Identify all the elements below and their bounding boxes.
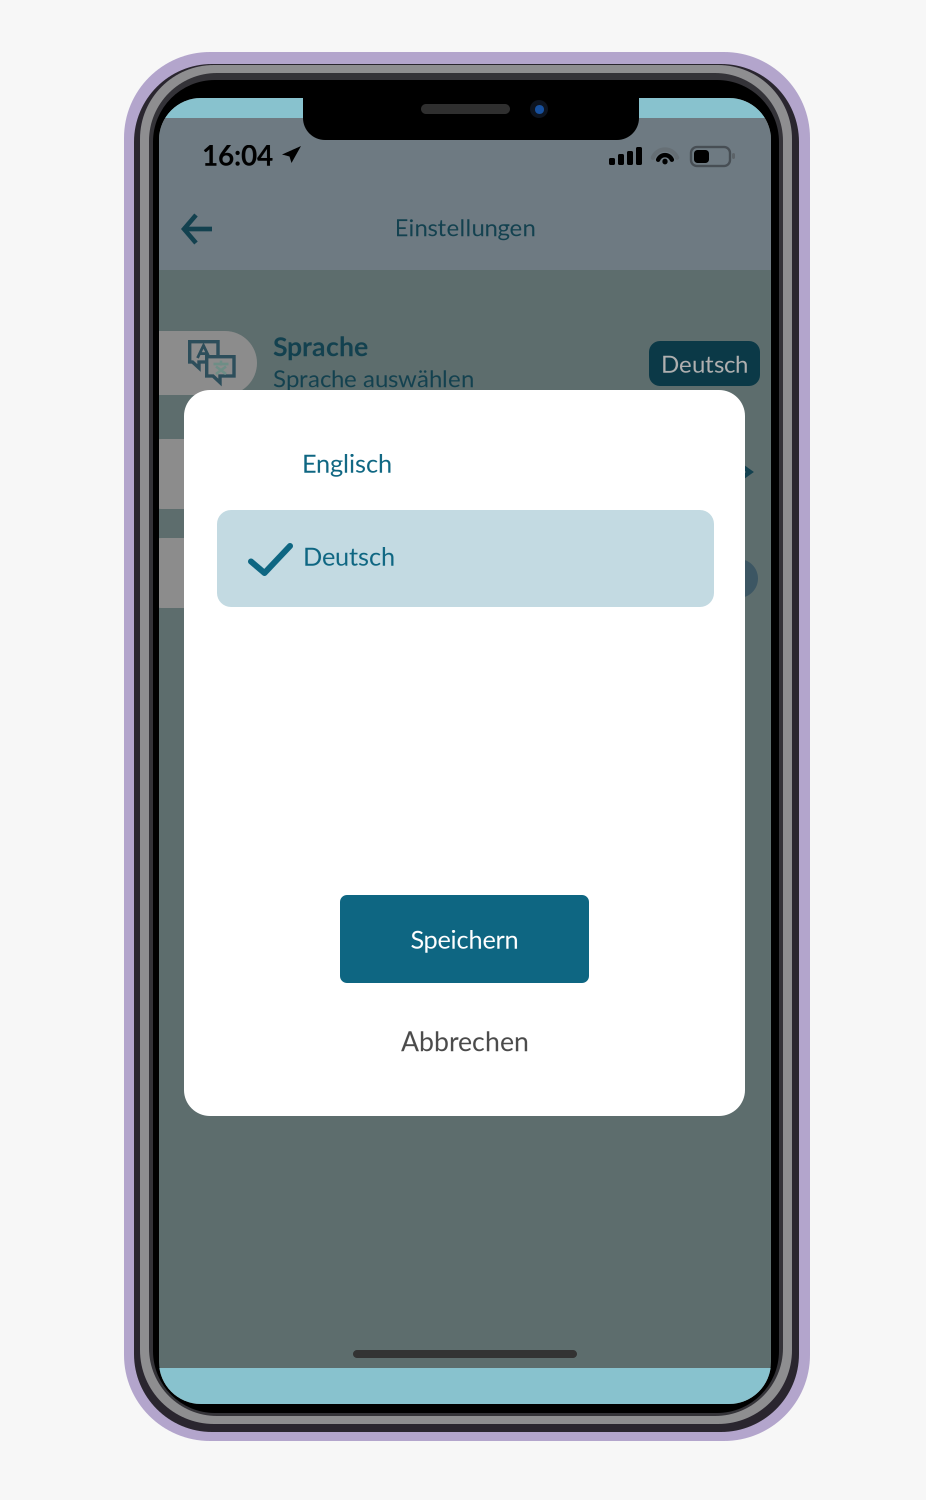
button[interactable]: Englisch <box>217 425 714 501</box>
staticText: Sprache auswählen <box>273 364 474 392</box>
button[interactable]: Speichern <box>340 895 589 983</box>
button[interactable]: Abbrechen <box>325 1009 605 1073</box>
staticText: Deutsch <box>303 541 395 571</box>
staticText: Englisch <box>302 448 392 478</box>
button[interactable]: Zurück <box>161 199 237 259</box>
staticText: Deutsch <box>661 349 748 378</box>
staticText: 16:04 <box>202 138 273 172</box>
staticText: Einstellungen <box>394 213 535 241</box>
staticText: Sprache <box>273 330 368 362</box>
staticText: Abbrechen <box>401 1025 529 1057</box>
button[interactable]: Deutsch <box>217 510 714 607</box>
staticText: Speichern <box>410 924 518 954</box>
